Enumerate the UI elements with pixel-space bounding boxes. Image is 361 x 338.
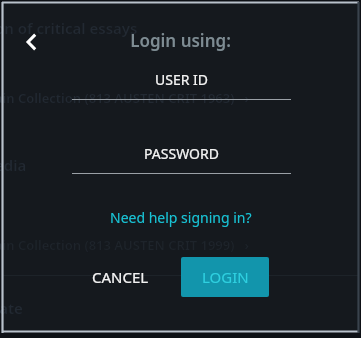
staticText: Login using: — [130, 29, 231, 52]
button[interactable]: LOGIN — [181, 257, 269, 297]
staticText: on of critical essays — [0, 18, 138, 38]
staticText: CANCEL — [92, 267, 149, 287]
staticText: late — [0, 298, 23, 318]
staticText: USER ID — [72, 70, 291, 89]
staticText: edia — [0, 155, 27, 175]
staticText: Need help signing in? — [110, 208, 252, 227]
staticText: ain Collection (813 AUSTEN CRIT 1999) › — [0, 236, 250, 254]
button[interactable]: PASSWORD — [72, 144, 291, 174]
button[interactable]: CANCEL — [78, 257, 163, 297]
staticText: LOGIN — [202, 267, 249, 287]
button[interactable]: Need help signing in? — [104, 204, 258, 231]
button[interactable]: USER ID — [72, 70, 291, 100]
staticText: PASSWORD — [72, 144, 291, 163]
button[interactable]: Back — [12, 22, 52, 62]
staticText: ain Collection (813 AUSTEN CRIT 1963) › — [0, 89, 250, 107]
